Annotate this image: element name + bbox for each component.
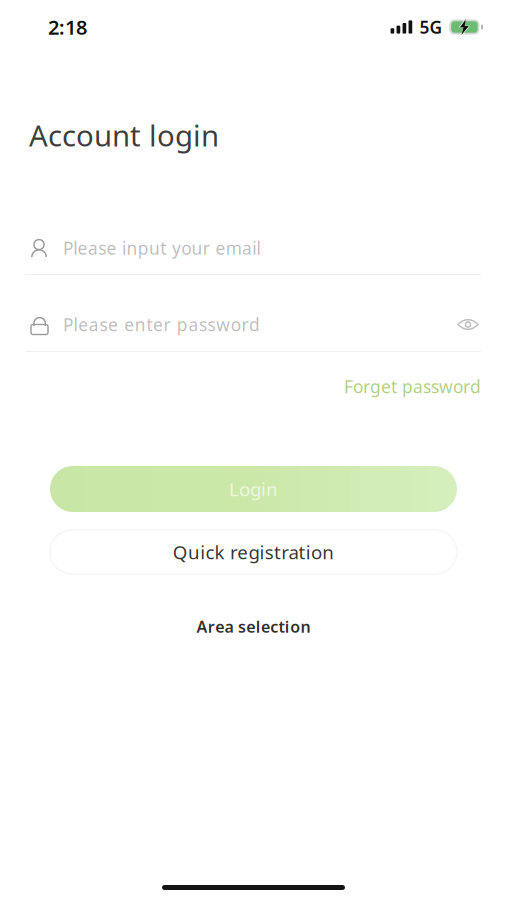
staticText: Quick registration [173, 540, 334, 564]
staticText: Please enter password [63, 313, 260, 336]
staticText: Area selection [197, 616, 310, 637]
staticText: Login [229, 477, 278, 501]
button[interactable]: Forget password [344, 373, 481, 400]
button[interactable]: Login [50, 466, 457, 512]
button[interactable]: Please enter password [26, 312, 481, 352]
staticText: Please input your email [63, 236, 261, 259]
staticText: Account login [29, 115, 219, 154]
button[interactable]: Please input your email [26, 235, 481, 275]
button[interactable]: Quick registration [50, 530, 457, 574]
button[interactable]: Area selection [163, 612, 343, 641]
button[interactable]: Show password [455, 312, 481, 337]
staticText: 2:18 [48, 14, 87, 40]
staticText: 5G [419, 15, 442, 38]
staticText: Forget password [344, 375, 481, 398]
